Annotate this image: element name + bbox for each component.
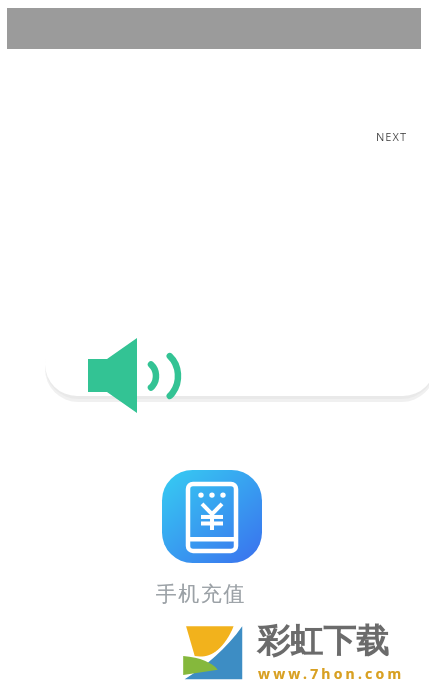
button[interactable]: Play pronunciation <box>80 334 176 392</box>
button[interactable]: NEXT <box>370 124 414 149</box>
button[interactable]: 手机充值 <box>155 581 245 607</box>
staticText: NEXT <box>376 129 408 144</box>
staticText: 手机充值 <box>155 581 245 607</box>
staticText: 彩虹下载 <box>257 620 389 662</box>
staticText: www.7hon.com <box>258 664 405 683</box>
button[interactable]: 手机充值 <box>162 470 262 563</box>
